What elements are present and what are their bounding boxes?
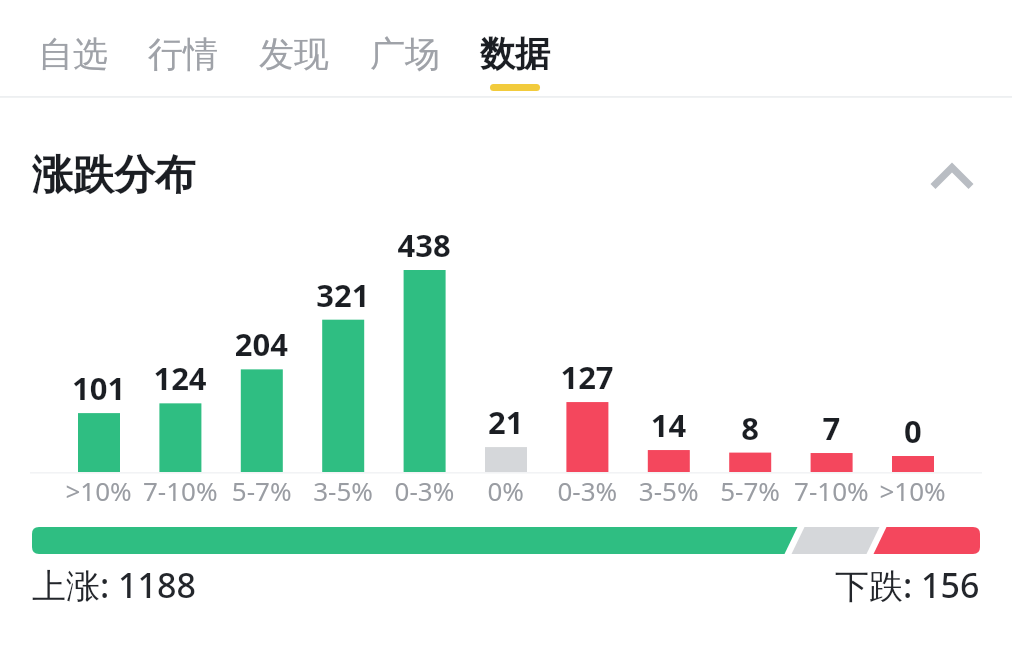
- button[interactable]: 折叠 涨跌分布: [0, 125, 1012, 220]
- button[interactable]: 行情: [128, 8, 238, 88]
- button[interactable]: 广场: [350, 8, 460, 88]
- button[interactable]: 数据: [460, 8, 570, 88]
- button[interactable]: 发现: [239, 8, 349, 88]
- button[interactable]: 自选: [18, 8, 128, 88]
